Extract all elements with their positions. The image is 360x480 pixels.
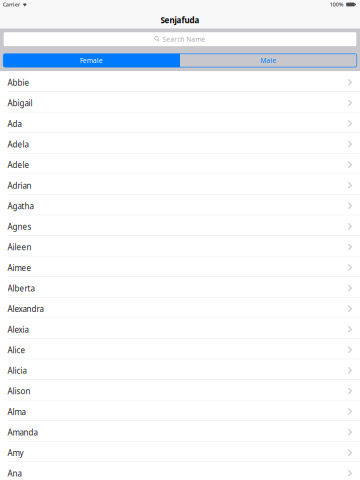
staticText: Aimee bbox=[8, 262, 32, 273]
staticText: Adela bbox=[8, 139, 29, 150]
button[interactable]: Aimee bbox=[0, 256, 360, 277]
staticText: Search Name bbox=[162, 35, 205, 44]
button[interactable]: Abbie bbox=[0, 71, 360, 92]
button[interactable]: Search Name bbox=[3, 32, 357, 46]
staticText: Alberta bbox=[8, 283, 35, 294]
button[interactable]: Female bbox=[3, 54, 180, 67]
staticText: Ana bbox=[8, 468, 22, 479]
staticText: Agnes bbox=[8, 221, 32, 232]
staticText: Male bbox=[260, 56, 276, 65]
staticText: Agatha bbox=[8, 201, 34, 211]
staticText: Ada bbox=[8, 118, 22, 129]
button[interactable]: Abigail bbox=[0, 92, 360, 113]
button[interactable]: Adrian bbox=[0, 174, 360, 195]
staticText: Alicia bbox=[8, 365, 27, 376]
button[interactable]: Adela bbox=[0, 133, 360, 154]
button[interactable]: Ana bbox=[0, 462, 360, 480]
button[interactable]: Alberta bbox=[0, 277, 360, 298]
button[interactable]: Amy bbox=[0, 442, 360, 462]
button[interactable]: Agatha bbox=[0, 195, 360, 215]
staticText: Alice bbox=[8, 345, 26, 355]
staticText: Female bbox=[80, 56, 103, 65]
staticText: Carrier bbox=[3, 1, 20, 8]
button[interactable]: Adele bbox=[0, 154, 360, 174]
button[interactable]: Alma bbox=[0, 400, 360, 421]
button[interactable]: Alison bbox=[0, 380, 360, 400]
button[interactable]: Alice bbox=[0, 339, 360, 359]
button[interactable]: Alexia bbox=[0, 318, 360, 339]
staticText: Abbie bbox=[8, 77, 30, 88]
button[interactable]: Agnes bbox=[0, 215, 360, 236]
staticText: Alexandra bbox=[8, 304, 44, 314]
button[interactable]: Alicia bbox=[0, 359, 360, 380]
staticText: Aileen bbox=[8, 242, 32, 252]
button[interactable]: Aileen bbox=[0, 236, 360, 257]
staticText: Amanda bbox=[8, 427, 38, 438]
button[interactable]: Male bbox=[180, 54, 357, 67]
staticText: Adrian bbox=[8, 180, 32, 191]
button[interactable]: Alexandra bbox=[0, 298, 360, 318]
staticText: Alexia bbox=[8, 324, 29, 335]
staticText: Adele bbox=[8, 160, 30, 170]
button[interactable]: Amanda bbox=[0, 421, 360, 442]
staticText: 100% bbox=[330, 1, 344, 8]
staticText: Abigail bbox=[8, 98, 33, 108]
staticText: Senjafuda bbox=[160, 15, 199, 25]
staticText: Alma bbox=[8, 406, 26, 417]
staticText: Amy bbox=[8, 448, 24, 458]
button[interactable]: Ada bbox=[0, 112, 360, 133]
staticText: Alison bbox=[8, 386, 31, 396]
